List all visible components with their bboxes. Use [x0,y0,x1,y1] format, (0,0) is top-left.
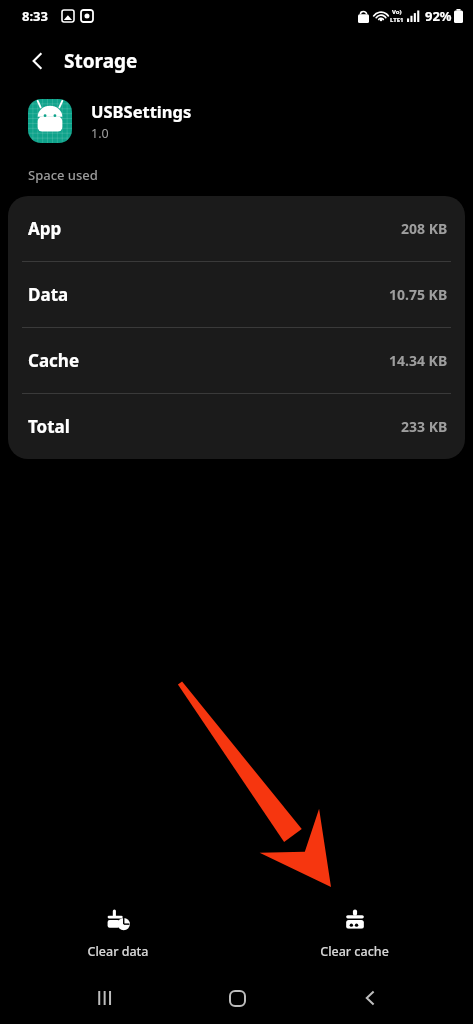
button[interactable]: App [8,196,465,261]
staticText: 8:33 [22,7,48,25]
staticText: 208 KB [401,219,448,238]
staticText: Space used [28,166,98,184]
staticText: Storage [64,48,138,74]
staticText: 1.0 [91,125,109,142]
button[interactable]: Total [8,394,465,459]
button[interactable]: Recent apps [82,975,128,1021]
staticText: Total [28,415,70,438]
staticText: Clear cache [320,943,389,960]
staticText: Data [28,283,69,306]
staticText: 233 KB [401,417,448,436]
button[interactable]: Back [347,975,393,1021]
staticText: 92% [425,7,452,25]
staticText: Cache [28,349,80,372]
staticText: 14.34 KB [389,351,448,370]
button[interactable]: Back [18,41,58,81]
button[interactable]: Data [8,262,465,327]
staticText: LTE1 [390,16,404,24]
staticText: USBSettings [91,100,192,122]
staticText: 10.75 KB [389,285,448,304]
staticText: App [28,217,62,240]
button[interactable]: Clear cache [236,896,473,972]
button[interactable]: Clear data [0,896,236,972]
staticText: Vo) [392,8,402,16]
staticText: Clear data [87,943,149,960]
button[interactable]: Home [214,975,260,1021]
button[interactable]: Cache [8,328,465,393]
